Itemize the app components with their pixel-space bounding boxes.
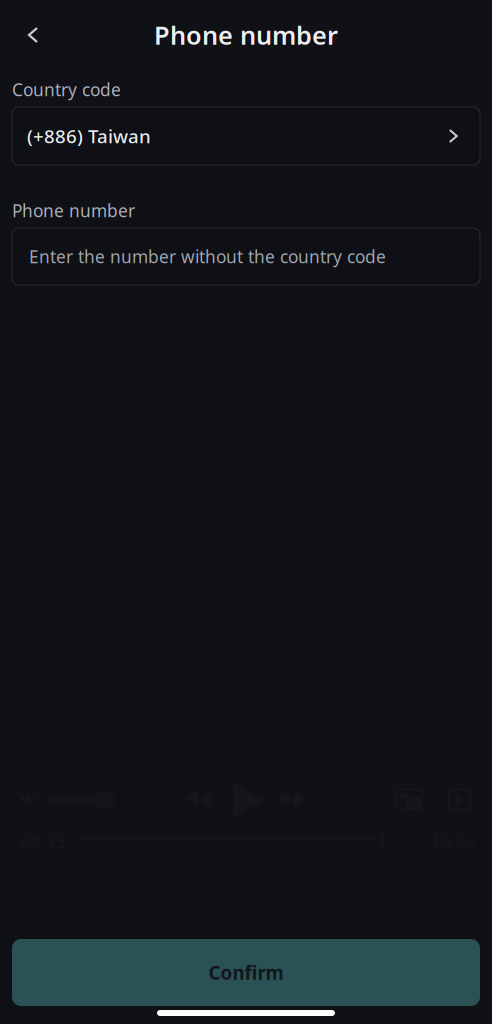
- staticText: Confirm: [208, 960, 283, 985]
- button[interactable]: Confirm: [12, 939, 480, 1006]
- staticText: Phone number: [154, 18, 338, 52]
- button[interactable]: (+886) Taiwan: [12, 107, 480, 165]
- staticText: (+886) Taiwan: [27, 124, 151, 148]
- staticText: Country code: [12, 78, 121, 101]
- staticText: Phone number: [12, 199, 135, 222]
- button[interactable]: Back: [11, 13, 55, 57]
- staticText: Enter the number without the country cod…: [29, 245, 386, 268]
